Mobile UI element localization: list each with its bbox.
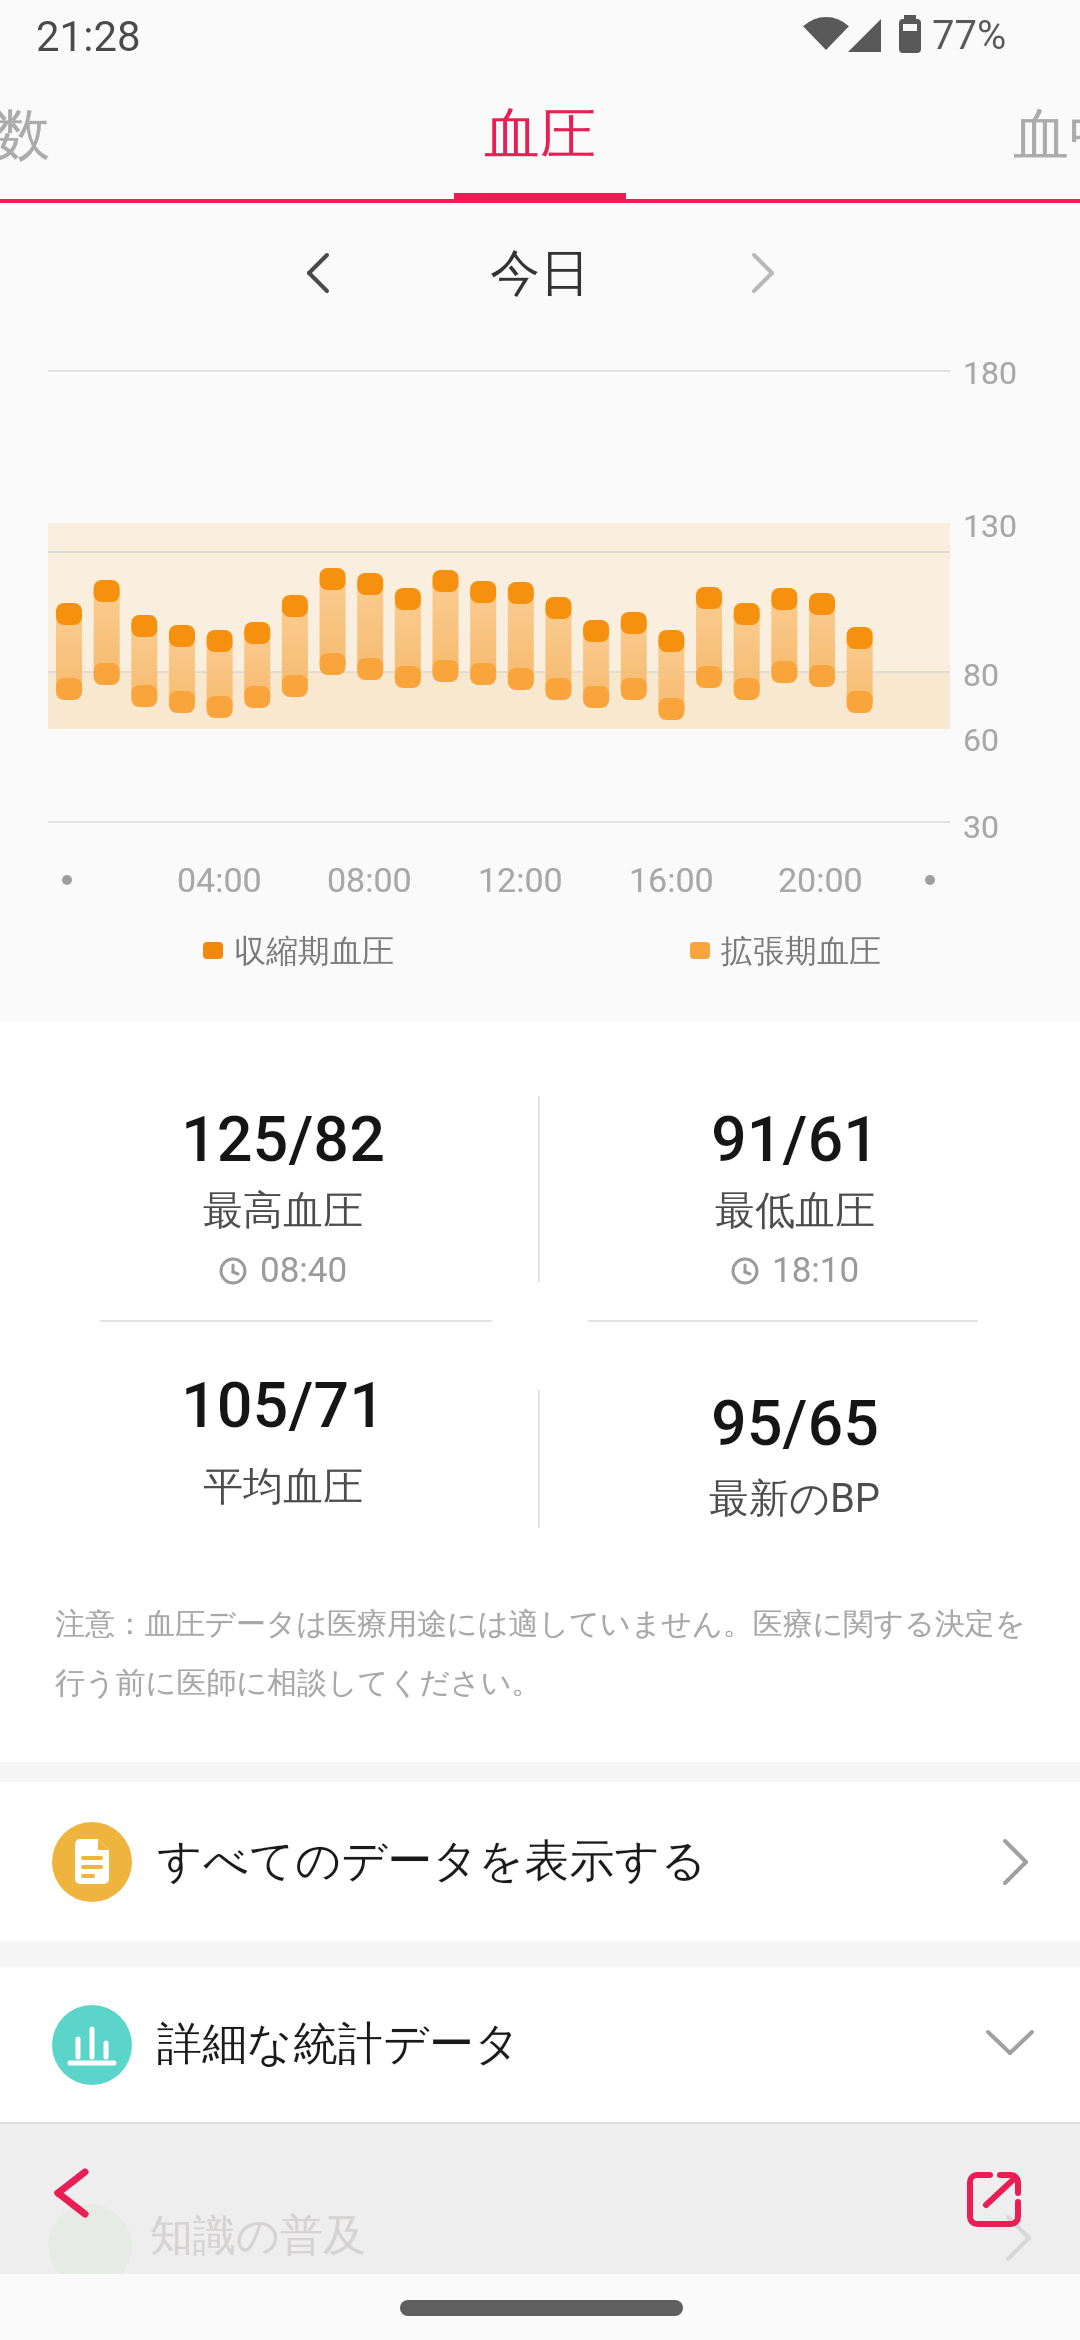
staticText: 最低血圧 xyxy=(715,1185,875,1235)
button[interactable]: 知識の普及 xyxy=(0,2124,1080,2274)
button[interactable]: すべてのデータを表示する xyxy=(0,1782,1080,1941)
button[interactable]: 血中酸素 xyxy=(1013,100,1080,171)
staticText: 血中酸素 xyxy=(1013,100,1080,171)
staticText: 21:28 xyxy=(36,12,141,61)
button[interactable] xyxy=(964,2170,1024,2230)
staticText: 180 xyxy=(963,354,1017,392)
button[interactable] xyxy=(50,2165,94,2219)
staticText: 心拍数 xyxy=(0,100,50,171)
staticText: 12:00 xyxy=(478,860,563,900)
button[interactable]: 血圧 xyxy=(440,88,640,180)
staticText: 130 xyxy=(963,507,1017,545)
staticText: 注意：血圧データは医療用途には適していません。医療に関する決定を xyxy=(55,1605,1026,1643)
staticText: 91/61 xyxy=(711,1103,880,1177)
staticText: 最高血圧 xyxy=(203,1185,363,1235)
staticText: 20:00 xyxy=(778,860,863,900)
staticText: 08:00 xyxy=(327,860,412,900)
staticText: 平均血圧 xyxy=(203,1461,363,1511)
button[interactable] xyxy=(745,250,781,296)
staticText: 04:00 xyxy=(177,860,262,900)
staticText: すべてのデータを表示する xyxy=(157,1833,707,1890)
staticText: 105/71 xyxy=(181,1369,385,1443)
button[interactable]: 詳細な統計データ xyxy=(0,1967,1080,2122)
staticText: 収縮期血圧 xyxy=(234,931,394,971)
button[interactable]: 心拍数 xyxy=(0,100,50,171)
staticText: 125/82 xyxy=(181,1103,385,1177)
staticText: 最新のBP xyxy=(709,1473,881,1523)
staticText: 今日 xyxy=(490,242,590,305)
staticText: 60 xyxy=(963,721,999,759)
staticText: 30 xyxy=(963,808,999,846)
staticText: 行う前に医師に相談してください。 xyxy=(55,1664,542,1702)
staticText: 知識の普及 xyxy=(150,2209,367,2263)
staticText: 詳細な統計データ xyxy=(157,2016,521,2073)
staticText: 80 xyxy=(963,656,999,694)
staticText: 血圧 xyxy=(484,99,596,170)
staticText: 77% xyxy=(932,12,1007,59)
button[interactable] xyxy=(300,250,336,296)
staticText: 16:00 xyxy=(629,860,714,900)
staticText: 18:10 xyxy=(772,1250,860,1291)
staticText: 08:40 xyxy=(260,1250,348,1291)
staticText: 拡張期血圧 xyxy=(721,931,881,971)
staticText: 95/65 xyxy=(711,1387,880,1461)
